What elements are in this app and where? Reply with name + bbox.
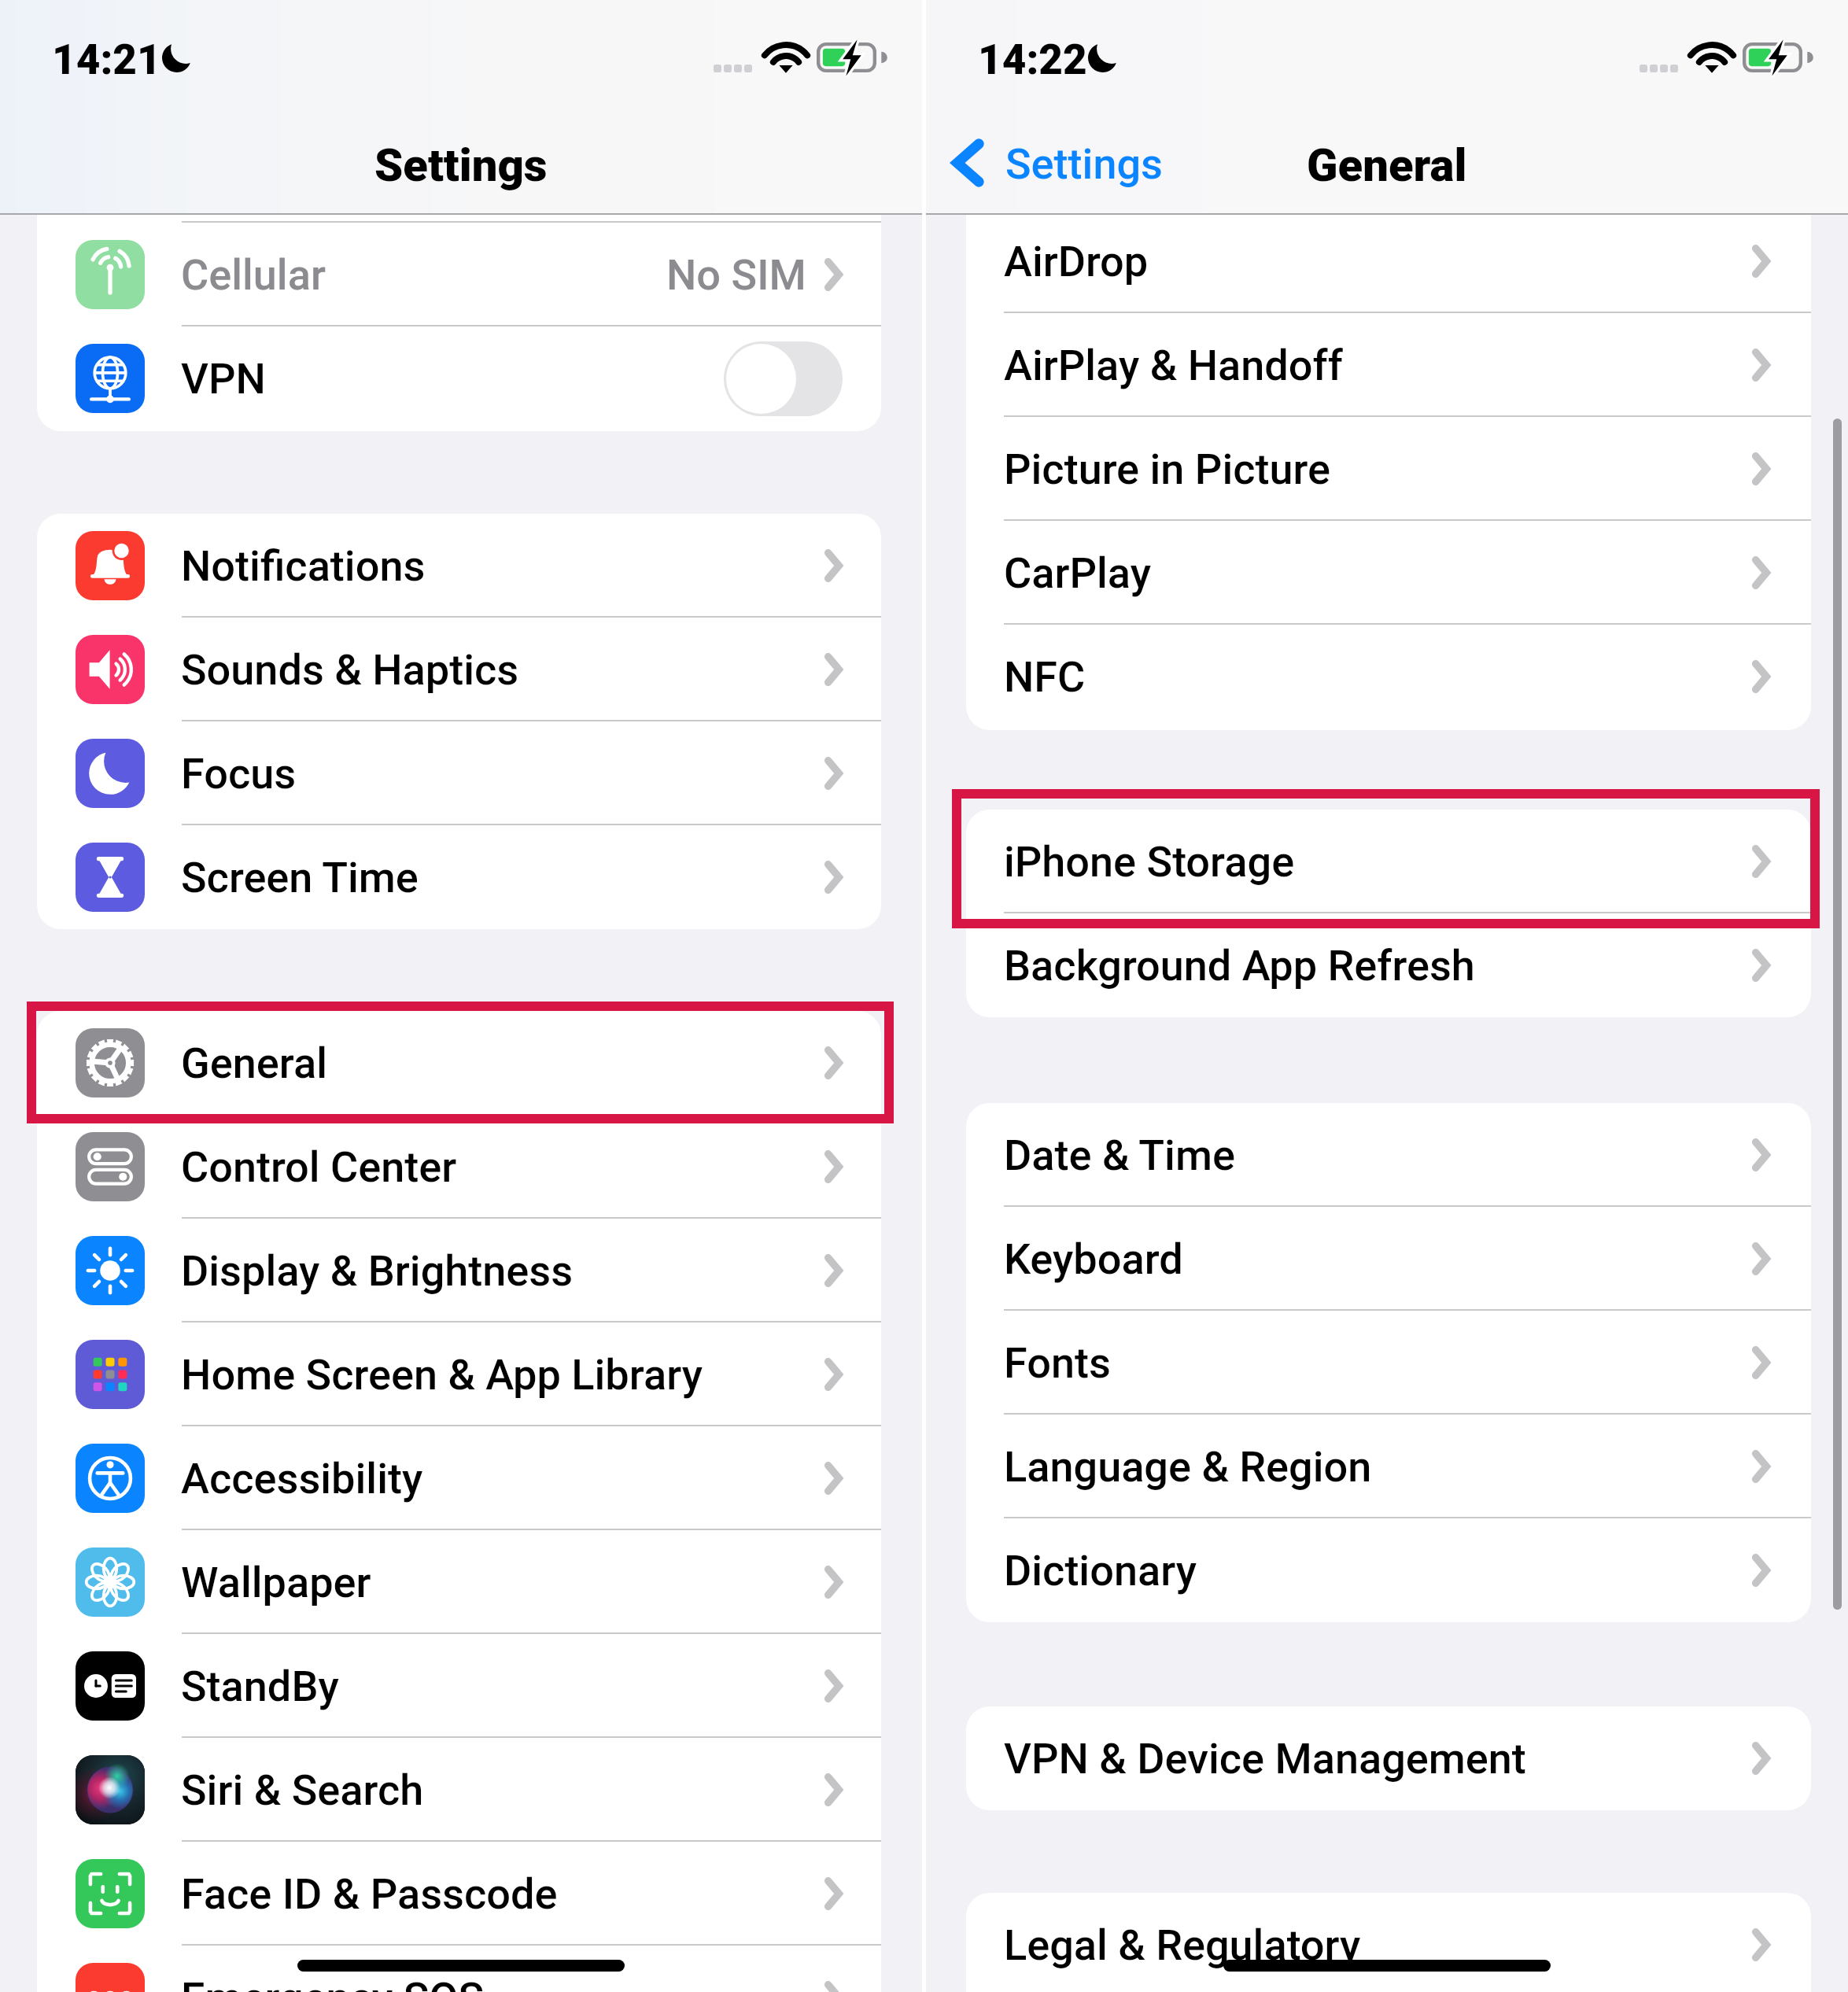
button[interactable]: Siri & Search [37,1738,881,1842]
staticText: Picture in Picture [1004,445,1330,494]
button[interactable]: Emergency SOS [37,1946,881,1992]
button[interactable]: iPhone Storage [966,810,1811,913]
staticText: Date & Time [1004,1131,1235,1180]
button[interactable]: Dictionary [966,1518,1811,1622]
staticText: Cellular [181,250,326,300]
staticText: iPhone Storage [1004,837,1295,887]
button[interactable]: Screen Time [37,825,881,929]
staticText: Language & Region [1004,1442,1372,1492]
staticText: Notifications [181,541,426,591]
staticText: Sounds & Haptics [181,645,519,695]
staticText: Screen Time [181,853,419,902]
button[interactable]: Face ID & Passcode [37,1842,881,1946]
button[interactable]: Display & Brightness [37,1219,881,1322]
button[interactable]: Fonts [966,1311,1811,1415]
staticText: No SIM [666,250,806,300]
button[interactable]: Keyboard [966,1207,1811,1311]
button[interactable]: NFC [966,625,1811,729]
button[interactable]: CarPlay [966,521,1811,625]
button[interactable]: Control Center [37,1115,881,1219]
button[interactable]: Sounds & Haptics [37,618,881,721]
staticText: Settings [374,138,548,192]
staticText: Background App Refresh [1004,941,1475,990]
staticText: Legal & Regulatory [1004,1920,1361,1970]
staticText: Display & Brightness [181,1246,574,1296]
staticText: 14:21 [52,35,161,84]
staticText: General [1307,138,1467,192]
staticText: AirPlay & Handoff [1004,341,1343,390]
button[interactable]: Accessibility [37,1426,881,1530]
button[interactable]: StandBy [37,1634,881,1738]
button[interactable]: Home Screen & App Library [37,1322,881,1426]
staticText: Wallpaper [181,1558,371,1607]
button[interactable]: AirPlay & Handoff [966,313,1811,417]
staticText: Siri & Search [181,1765,424,1815]
button[interactable]: Focus [37,721,881,825]
button[interactable]: Notifications [37,514,881,618]
button[interactable]: VPN & Device Management [966,1706,1811,1810]
button[interactable]: Picture in Picture [966,417,1811,521]
button[interactable]: Cellular [37,223,881,326]
staticText: AirDrop [1004,237,1149,286]
staticText: VPN [181,354,266,404]
button[interactable]: Background App Refresh [966,913,1811,1017]
staticText: Focus [181,749,297,799]
button[interactable]: General [37,1011,881,1115]
button[interactable]: Wallpaper [37,1530,881,1634]
button[interactable]: VPN [37,326,881,430]
staticText: CarPlay [1004,548,1151,598]
staticText: Dictionary [1004,1546,1197,1595]
staticText: Control Center [181,1142,457,1192]
staticText: NFC [1004,652,1086,702]
staticText: Face ID & Passcode [181,1869,558,1919]
button[interactable]: Legal & Regulatory [966,1893,1811,1992]
staticText: General [181,1038,328,1088]
staticText: Accessibility [181,1454,423,1503]
button[interactable]: Back to Settings [945,129,1181,205]
staticText: Emergency SOS [181,1973,485,1992]
staticText: Fonts [1004,1338,1111,1388]
button[interactable]: Language & Region [966,1415,1811,1518]
button[interactable]: AirDrop [966,215,1811,313]
staticText: 14:22 [978,35,1087,84]
staticText: StandBy [181,1662,339,1711]
staticText: VPN & Device Management [1004,1734,1526,1784]
staticText: Keyboard [1004,1234,1183,1284]
staticText: Home Screen & App Library [181,1350,703,1400]
staticText: Settings [1005,139,1163,189]
button[interactable]: Date & Time [966,1103,1811,1207]
